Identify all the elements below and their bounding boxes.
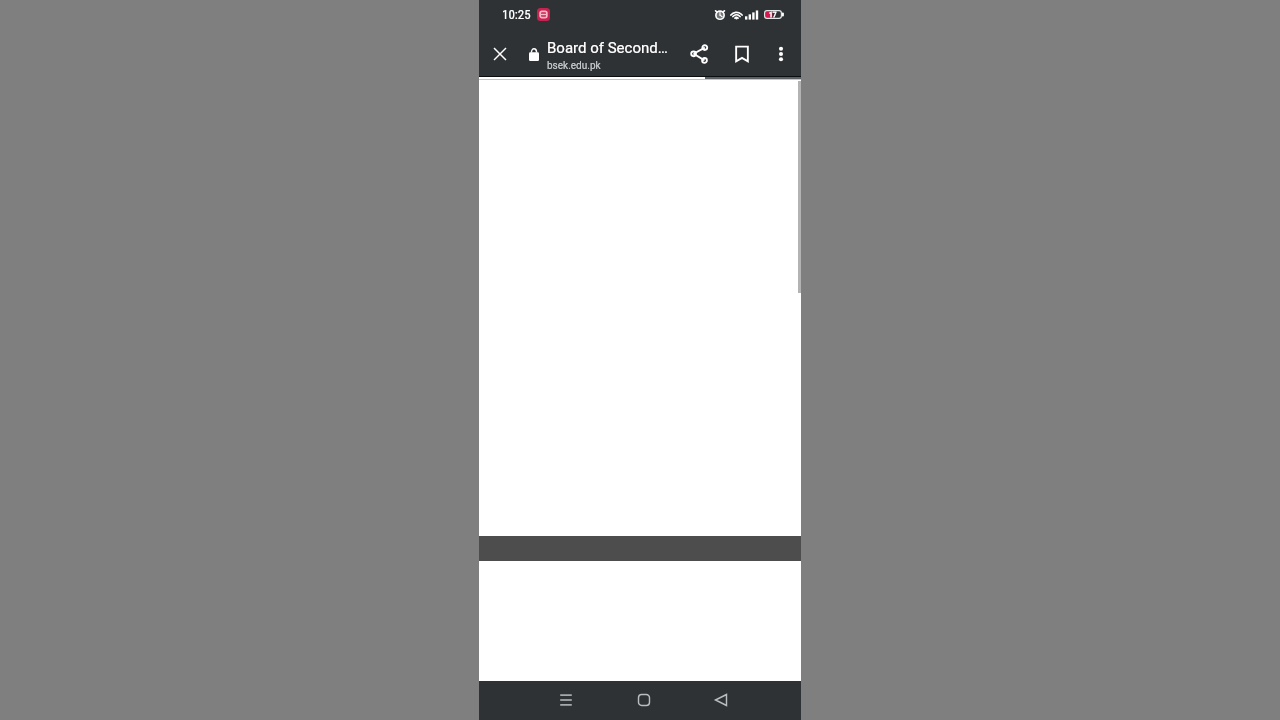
staticText: bsek.edu.pk: [547, 60, 601, 72]
staticText: 10:25: [502, 7, 531, 22]
button[interactable]: More options: [768, 41, 794, 67]
button[interactable]: Home: [628, 684, 660, 716]
button[interactable]: Back: [705, 684, 737, 716]
staticText: 17: [769, 11, 777, 19]
button[interactable]: Close: [487, 41, 513, 67]
button[interactable]: Recent apps: [550, 684, 582, 716]
button[interactable]: Share: [686, 41, 712, 67]
button[interactable]: Bookmark: [729, 41, 755, 67]
staticText: Board of Second…: [547, 39, 668, 57]
